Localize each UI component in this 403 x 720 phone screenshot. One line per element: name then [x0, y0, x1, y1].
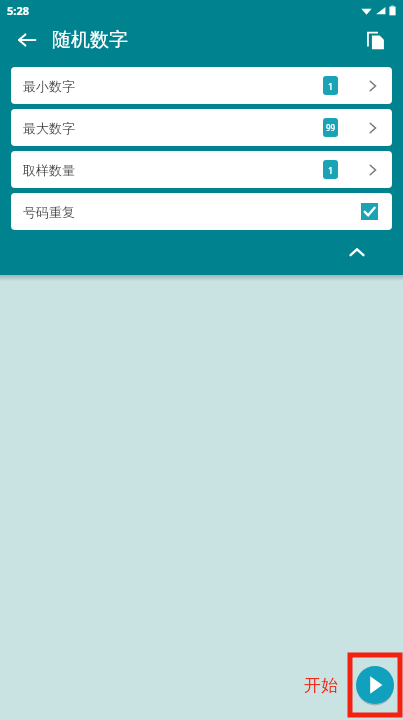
- staticText: 取样数量: [23, 162, 75, 178]
- staticText: 5:28: [7, 3, 29, 18]
- staticText: 最小数字: [23, 78, 75, 94]
- button[interactable]: Copy: [359, 24, 391, 56]
- button[interactable]: Back: [12, 25, 42, 55]
- button[interactable]: 最大数字: [11, 109, 392, 146]
- staticText: 号码重复: [23, 204, 75, 220]
- staticText: 开始: [304, 675, 338, 696]
- button[interactable]: Collapse: [341, 237, 373, 269]
- button[interactable]: 取样数量: [11, 151, 392, 188]
- button[interactable]: Start: [356, 666, 394, 704]
- button[interactable]: 号码重复: [11, 193, 392, 230]
- staticText: 1: [328, 80, 334, 92]
- staticText: 随机数字: [52, 28, 128, 52]
- staticText: 最大数字: [23, 120, 75, 136]
- staticText: 1: [328, 164, 334, 176]
- staticText: 99: [326, 122, 336, 133]
- button[interactable]: 最小数字: [11, 67, 392, 104]
